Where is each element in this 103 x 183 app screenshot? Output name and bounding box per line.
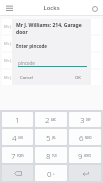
staticText: GHI	[18, 136, 23, 140]
staticText: 9	[78, 150, 83, 161]
button[interactable]: Refresh	[89, 3, 100, 14]
staticText: 6	[79, 132, 84, 143]
staticText: Mr J. Williams	[4, 75, 30, 80]
staticText: 8	[46, 150, 51, 161]
button[interactable]: 0	[35, 165, 67, 181]
button[interactable]: 1	[2, 112, 33, 127]
button[interactable]: Mr J. Williams	[2, 53, 101, 68]
staticText: 4	[12, 132, 17, 143]
button[interactable]: 2	[35, 112, 67, 127]
staticText: 5	[46, 132, 51, 143]
staticText: 2	[45, 114, 50, 125]
staticText: MNO	[85, 136, 92, 140]
button[interactable]: pincode	[18, 59, 87, 67]
staticText: Mr J. Williams	[4, 24, 30, 29]
button[interactable]: 7	[2, 147, 33, 163]
staticText: JKL	[52, 136, 56, 140]
staticText: 3	[80, 114, 85, 125]
staticText: +	[53, 172, 55, 176]
button[interactable]: 3	[69, 112, 101, 127]
staticText: 1	[15, 114, 20, 125]
staticText: TUV	[52, 154, 57, 158]
staticText: OK	[75, 75, 81, 81]
staticText: WXYZ	[84, 154, 92, 158]
button[interactable]: Enter	[69, 165, 101, 181]
staticText: pincode	[18, 60, 35, 66]
button[interactable]: Backspace	[2, 165, 33, 181]
button[interactable]: 9	[69, 147, 101, 163]
button[interactable]: 8	[35, 147, 67, 163]
staticText: Mr J. Williams: 214, Garage door	[16, 22, 87, 36]
staticText: ABC	[51, 118, 57, 122]
button[interactable]: Cancel	[18, 73, 36, 83]
staticText: Enter pincode	[16, 43, 48, 49]
button[interactable]: Mr J. Williams	[2, 70, 101, 85]
button[interactable]: Menu	[3, 2, 15, 14]
staticText: Mr J. Williams	[4, 41, 30, 46]
button[interactable]: 6	[69, 129, 101, 145]
staticText: Cancel	[20, 75, 34, 81]
staticText: Mr J. Williams	[4, 58, 30, 63]
staticText: DEF	[86, 118, 91, 122]
button[interactable]: Mr J. Williams	[2, 19, 101, 34]
staticText: 7	[11, 150, 16, 161]
button[interactable]: Mr J. Williams	[2, 36, 101, 51]
button[interactable]: 4	[2, 129, 33, 145]
staticText: PQRS	[17, 154, 24, 158]
staticText: 0	[47, 168, 52, 179]
button[interactable]: OK	[73, 73, 83, 83]
staticText: Locks	[43, 4, 60, 12]
button[interactable]: 5	[35, 129, 67, 145]
